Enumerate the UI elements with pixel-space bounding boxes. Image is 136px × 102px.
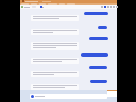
button[interactable] <box>31 42 79 50</box>
button[interactable] <box>31 29 79 35</box>
button[interactable] <box>31 15 79 21</box>
button[interactable]: Document <box>21 6 23 8</box>
button[interactable]: Sent message <box>89 37 108 40</box>
button[interactable] <box>31 71 79 77</box>
button[interactable]: Tab <box>31 3 37 5</box>
button[interactable]: Sent message <box>89 66 107 69</box>
button[interactable]: Sent message <box>81 53 108 57</box>
button[interactable]: Sent message <box>90 80 107 83</box>
button[interactable] <box>31 84 79 90</box>
button[interactable]: Tab <box>59 3 65 5</box>
button[interactable]: Sent message <box>84 12 108 15</box>
button[interactable] <box>31 58 79 64</box>
button[interactable]: Sent message <box>98 26 107 29</box>
button[interactable]: Message input <box>30 94 107 99</box>
